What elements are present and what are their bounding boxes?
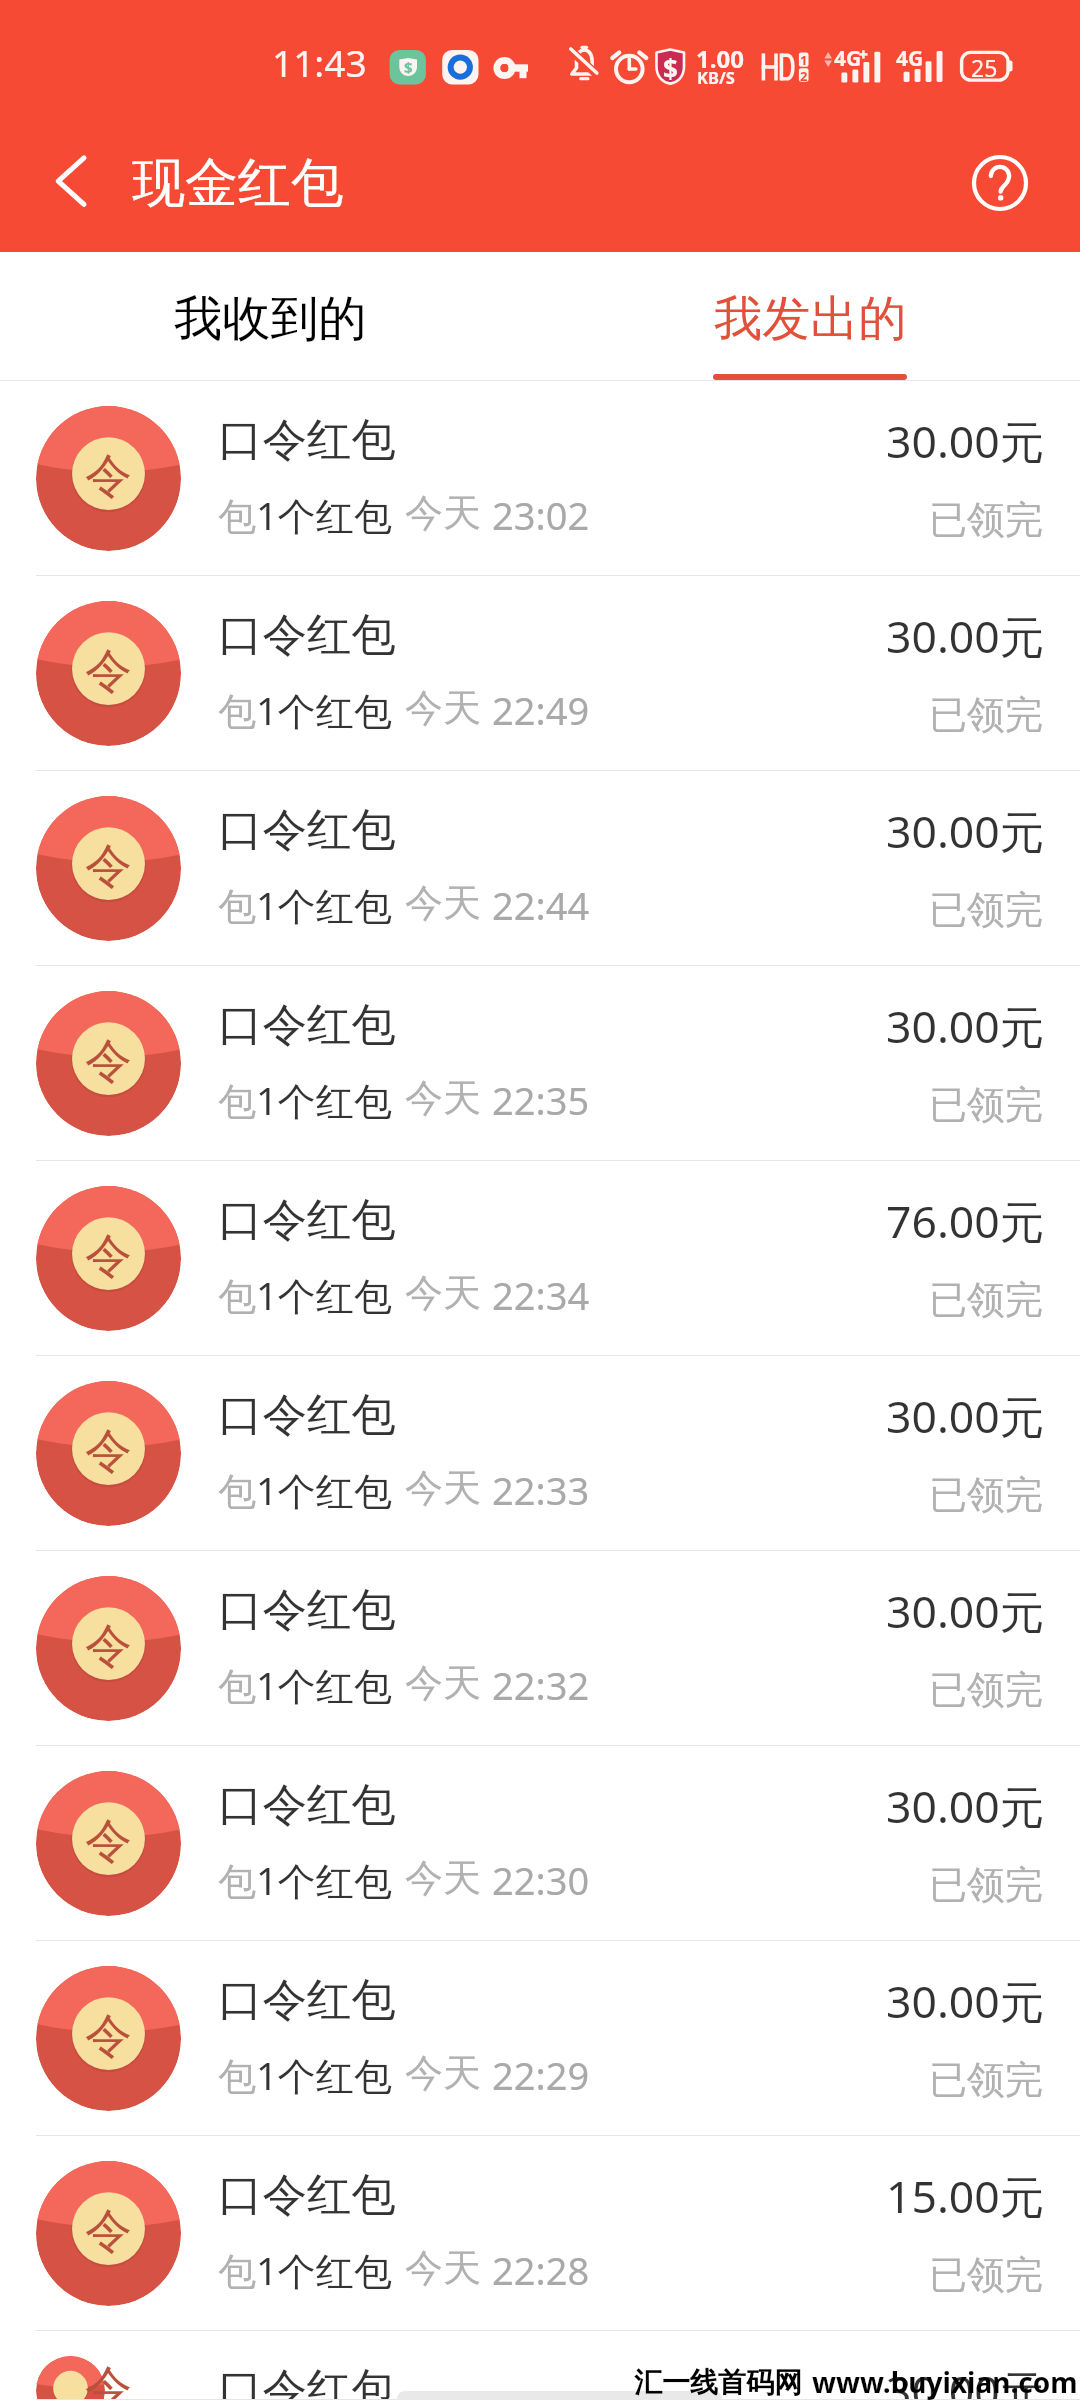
staticText: 15.00元 [886,2165,1045,2226]
button[interactable]: 令 [0,1356,1080,1551]
staticText: 令 [85,2359,132,2400]
staticText: 22:49 [492,684,590,736]
staticText: KB/S [697,66,735,88]
staticText: 1 [800,51,808,67]
staticText: 4G [834,44,862,73]
staticText: 包1个红包 [218,1269,392,1321]
staticText: 30.00元 [886,1970,1045,2031]
staticText: 2 [800,67,808,83]
staticText: 口令红包 [218,1192,396,1248]
staticText: 包1个红包 [218,2049,392,2101]
staticText: 30.00元 [886,410,1045,471]
staticText: $ [663,51,678,80]
staticText: 22:30 [492,1854,590,1906]
staticText: 30.00元 [886,2360,1045,2400]
staticText: 口令红包 [218,997,396,1053]
staticText: 22:32 [492,1659,590,1711]
staticText: 11:43 [272,37,367,87]
staticText: 已领完 [929,2251,1043,2299]
staticText: 已领完 [929,1081,1043,1129]
staticText: 22:29 [492,2049,590,2101]
staticText: 包1个红包 [218,684,392,736]
button[interactable]: 令 [0,2331,1080,2400]
button[interactable]: 令 [0,1941,1080,2136]
staticText: 已领完 [929,1666,1043,1714]
staticText: 口令红包 [218,2167,396,2223]
staticText: 今天 [405,1854,481,1902]
staticText: 口令红包 [218,412,396,468]
staticText: 令 [85,1617,132,1676]
staticText: 22:35 [492,1074,590,1126]
staticText: 1.00 [696,42,744,75]
staticText: 22:28 [492,2244,590,2296]
staticText: 令 [85,2007,132,2066]
staticText: 我发出的 [714,289,907,350]
staticText: 令 [85,1422,132,1481]
staticText: 已领完 [929,886,1043,934]
staticText: 30.00元 [886,995,1045,1056]
staticText: 今天 [405,2049,481,2097]
staticText: 包1个红包 [218,1854,392,1906]
staticText: 包1个红包 [218,489,392,541]
staticText: 23:02 [492,489,590,541]
staticText: 22:44 [492,879,590,931]
staticText: 令 [85,837,132,896]
staticText: 22:34 [492,1269,590,1321]
staticText: 口令红包 [218,2362,396,2400]
staticText: 令 [85,1227,132,1286]
button[interactable]: 令 [0,1551,1080,1746]
staticText: $ [404,57,413,76]
staticText: 30.00元 [886,1385,1045,1446]
button[interactable]: Back [26,142,116,224]
staticText: 现金红包 [132,150,344,217]
staticText: 包1个红包 [218,879,392,931]
staticText: 已领完 [929,2056,1043,2104]
staticText: 令 [85,642,132,701]
staticText: 包1个红包 [218,2244,392,2296]
staticText: 包1个红包 [218,1074,392,1126]
button[interactable]: 我收到的 [0,252,540,380]
staticText: 今天 [405,2244,481,2292]
button[interactable]: Help [962,145,1038,221]
button[interactable]: 令 [0,1746,1080,1941]
staticText: 今天 [405,879,481,927]
button[interactable]: 我发出的 [540,252,1080,380]
staticText: 已领完 [929,1471,1043,1519]
staticText: 口令红包 [218,607,396,663]
staticText: 口令红包 [218,1777,396,1833]
staticText: 今天 [405,1464,481,1512]
button[interactable]: 令 [0,381,1080,576]
staticText: 今天 [405,684,481,732]
button[interactable]: 令 [0,576,1080,771]
staticText: 30.00元 [886,1580,1045,1641]
staticText: 已领完 [929,1861,1043,1909]
staticText: 汇一线首码网 [634,2365,802,2400]
button[interactable]: 令 [0,1161,1080,1356]
staticText: 今天 [405,1659,481,1707]
button[interactable]: 令 [0,2136,1080,2331]
staticText: 令 [85,1812,132,1871]
staticText: 今天 [405,1269,481,1317]
staticText: 口令红包 [218,1387,396,1443]
staticText: 口令红包 [218,1582,396,1638]
staticText: 令 [85,2202,132,2261]
staticText: 76.00元 [886,1190,1045,1251]
staticText: www.buyixian.com [812,2363,1078,2400]
staticText: 口令红包 [218,802,396,858]
staticText: 今天 [405,489,481,537]
staticText: 30.00元 [886,800,1045,861]
staticText: 25 [971,52,998,80]
staticText: 令 [85,447,132,506]
staticText: 包1个红包 [218,1464,392,1516]
staticText: 令 [85,1032,132,1091]
button[interactable]: 令 [0,771,1080,966]
staticText: 已领完 [929,496,1043,544]
button[interactable]: 令 [0,966,1080,1161]
staticText: 我收到的 [174,289,367,350]
staticText: 已领完 [929,1276,1043,1324]
staticText: 包1个红包 [218,1659,392,1711]
staticText: 今天 [405,1074,481,1122]
staticText: 已领完 [929,691,1043,739]
staticText: 22:33 [492,1464,590,1516]
staticText: 30.00元 [886,605,1045,666]
